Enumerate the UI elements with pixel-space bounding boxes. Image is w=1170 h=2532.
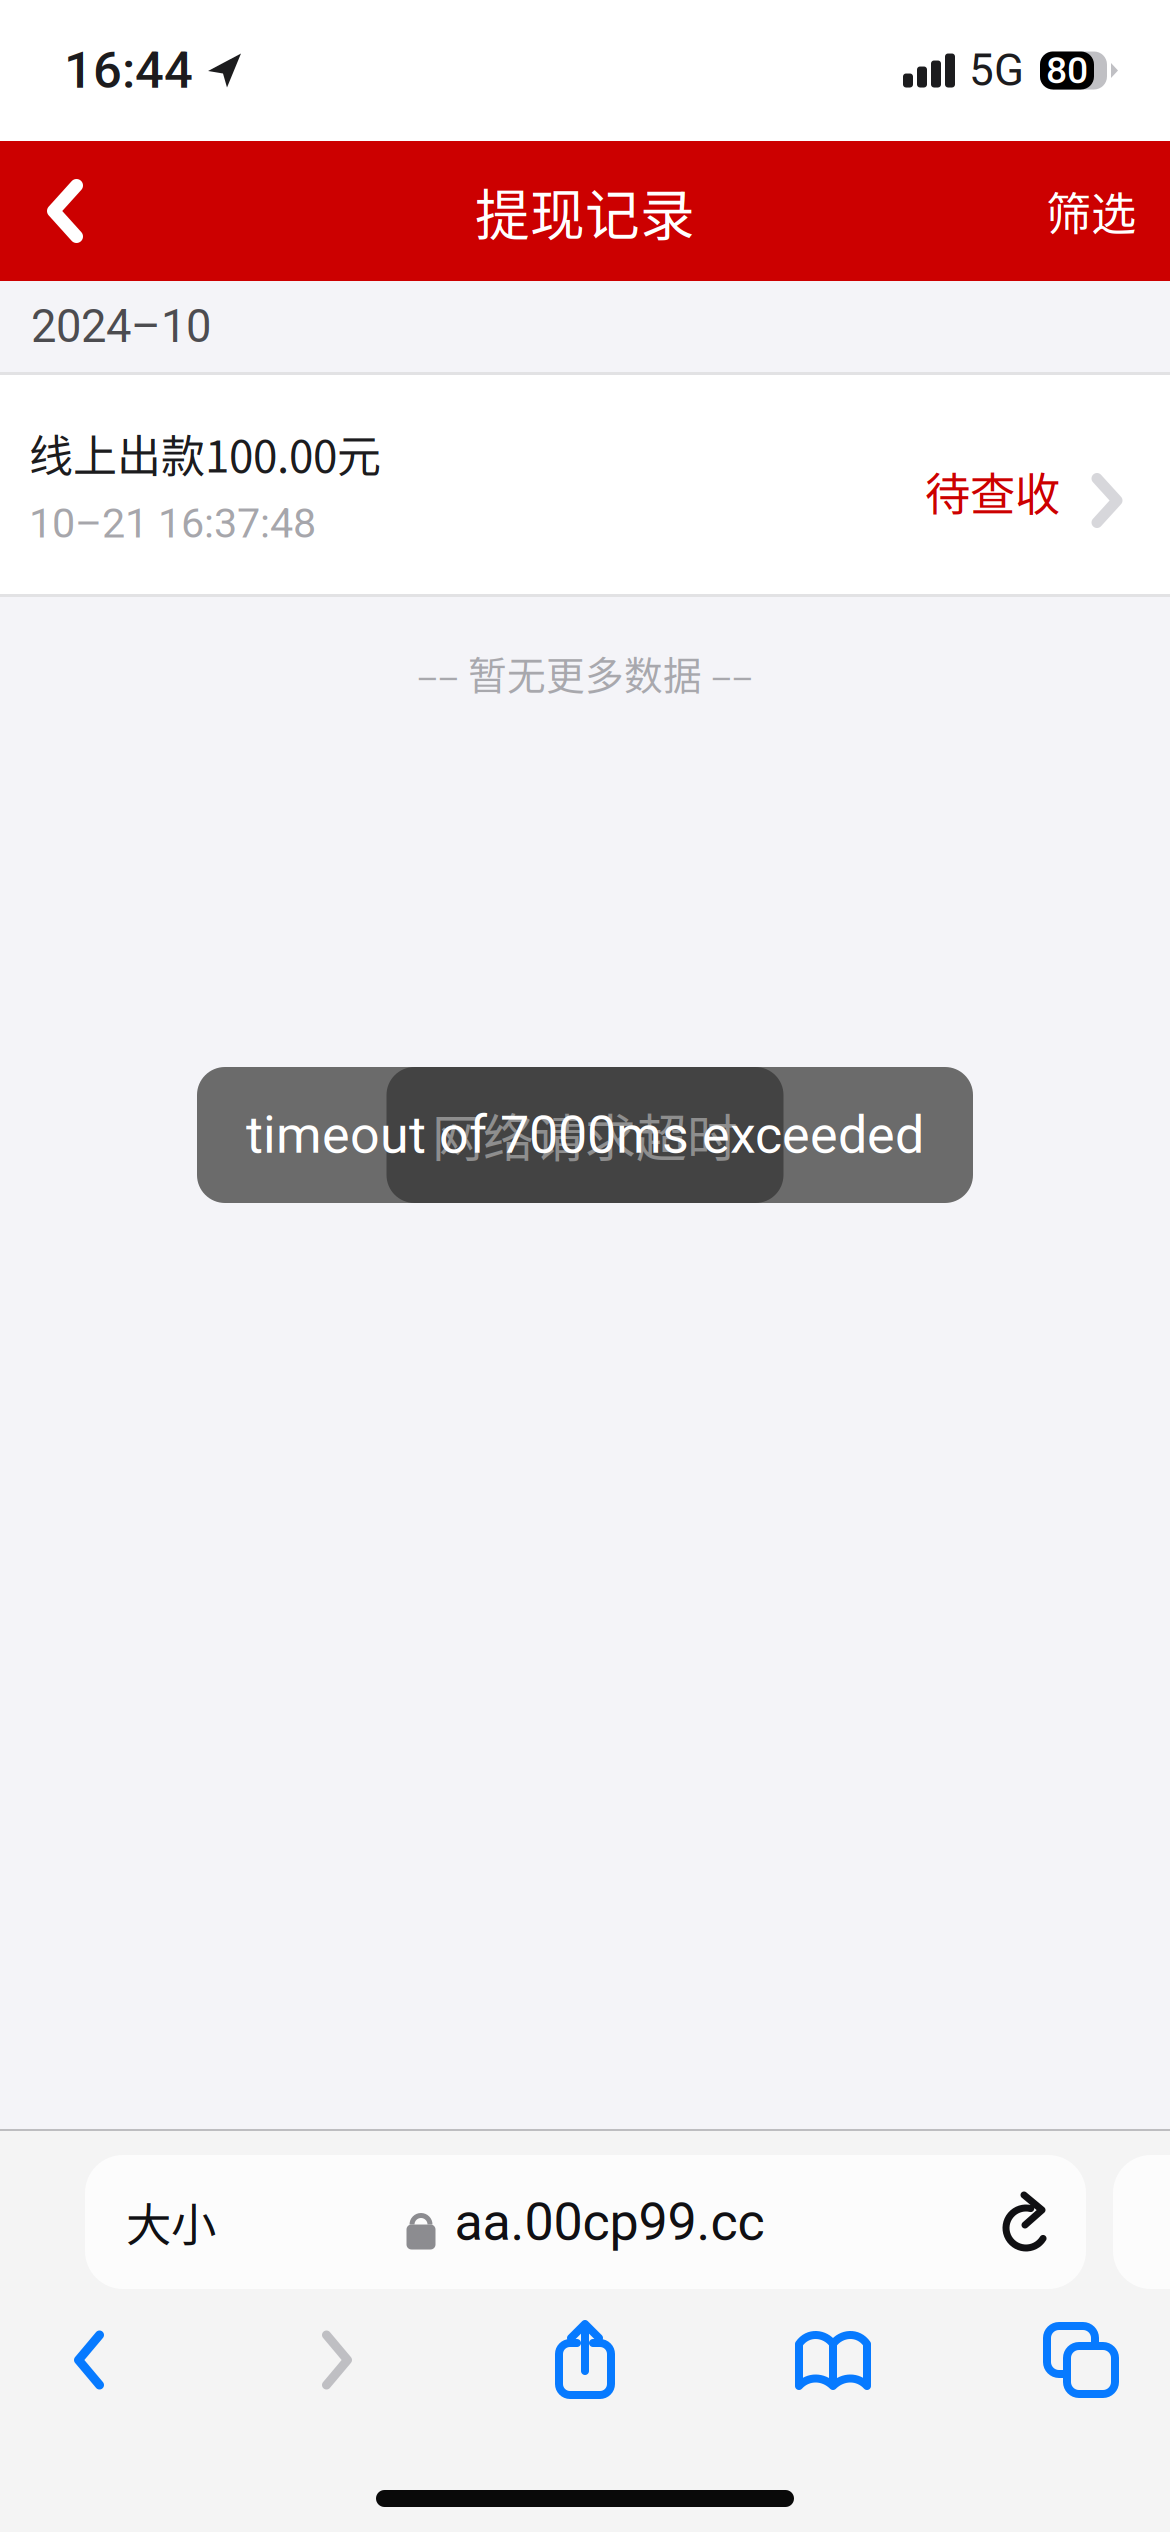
button[interactable]: Tabs bbox=[993, 2301, 1169, 2419]
staticText: 2024–10 bbox=[31, 300, 211, 353]
staticText: 大小 bbox=[126, 2189, 216, 2255]
staticText: timeout of 7000ms exceeded bbox=[246, 1104, 924, 1165]
staticText: –– 暂无更多数据 –– bbox=[417, 645, 753, 701]
button[interactable]: 返回 bbox=[0, 141, 130, 281]
staticText: 网络请求超时 bbox=[432, 1098, 738, 1172]
staticText: 筛选 bbox=[1046, 178, 1136, 244]
staticText: 10–21 16:37:48 bbox=[29, 499, 316, 547]
button[interactable]: Back bbox=[1, 2301, 177, 2419]
button[interactable]: Bookmarks bbox=[745, 2301, 921, 2419]
button[interactable]: 大小 bbox=[85, 2155, 1086, 2289]
button[interactable]: 筛选 bbox=[1012, 141, 1170, 281]
button[interactable]: 线上出款100.00元 bbox=[0, 375, 1170, 594]
staticText: 16:44 bbox=[64, 41, 193, 100]
staticText: 待查收 bbox=[925, 459, 1060, 524]
staticText: 80 bbox=[1046, 49, 1088, 92]
staticText: 提现记录 bbox=[475, 171, 695, 251]
staticText: 5G bbox=[969, 45, 1024, 96]
button[interactable]: Forward bbox=[249, 2301, 425, 2419]
staticText: aa.00cp99.cc bbox=[454, 2191, 764, 2252]
staticText: 线上出款100.00元 bbox=[29, 421, 381, 485]
button[interactable]: Share bbox=[497, 2301, 673, 2419]
